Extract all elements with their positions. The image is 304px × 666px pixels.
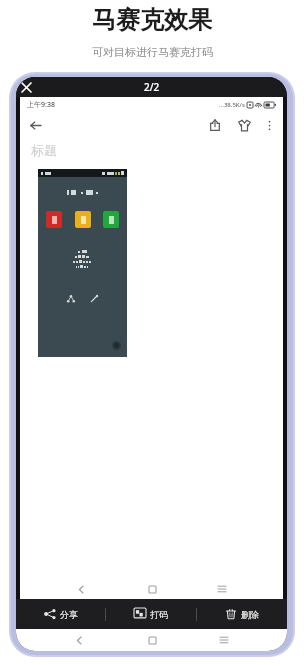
button[interactable]: 打码 xyxy=(106,599,196,629)
button[interactable]: Back xyxy=(25,115,45,135)
button[interactable]: Home xyxy=(142,630,162,650)
button[interactable]: Back xyxy=(69,630,89,650)
button[interactable]: Recents xyxy=(212,579,232,599)
staticText: 2/2 xyxy=(144,80,160,94)
staticText: 可对目标进行马赛克打码 xyxy=(92,45,213,59)
button[interactable] xyxy=(38,169,127,357)
staticText: 删除 xyxy=(241,609,259,620)
staticText: 马赛克效果 xyxy=(92,5,212,35)
staticText: 分享 xyxy=(60,609,78,620)
staticText: 标题 xyxy=(31,142,57,158)
staticText: 打码 xyxy=(150,609,168,620)
button[interactable]: Close xyxy=(17,78,35,96)
button[interactable]: Home xyxy=(142,579,162,599)
button[interactable]: Recents xyxy=(214,630,234,650)
button[interactable]: 删除 xyxy=(197,599,287,629)
staticText: 上午9:38 xyxy=(27,100,55,110)
button[interactable]: Share xyxy=(204,114,226,136)
button[interactable]: More options xyxy=(260,116,278,134)
button[interactable]: Back xyxy=(71,579,91,599)
staticText: ...38.5K/s xyxy=(219,101,245,109)
button[interactable]: Mosaic xyxy=(233,114,255,136)
button[interactable]: 分享 xyxy=(16,599,105,629)
